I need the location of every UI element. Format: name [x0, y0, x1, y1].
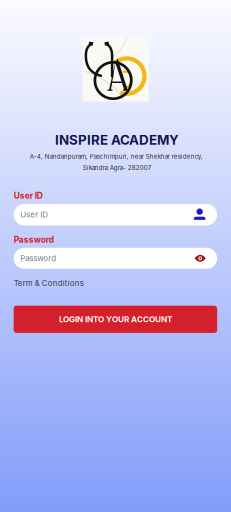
staticText: Term & Conditions [14, 278, 84, 288]
staticText: User ID [20, 210, 48, 219]
staticText: Password [14, 235, 54, 245]
staticText: LOGIN INTO YOUR ACCOUNT [59, 314, 172, 324]
button[interactable]: Password [14, 248, 217, 269]
staticText: Password [20, 253, 56, 263]
staticText: User ID [14, 190, 43, 201]
button[interactable]: Term & Conditions [14, 278, 217, 288]
button[interactable]: User ID [14, 204, 217, 225]
staticText: INSPIRE ACADEMY [55, 132, 179, 148]
staticText: A-4, Nandanpuram, Paschimpuri, near Shek… [30, 153, 203, 160]
staticText: Sikandra Agra- 282007 [83, 164, 152, 171]
button[interactable]: LOGIN INTO YOUR ACCOUNT [14, 306, 217, 333]
